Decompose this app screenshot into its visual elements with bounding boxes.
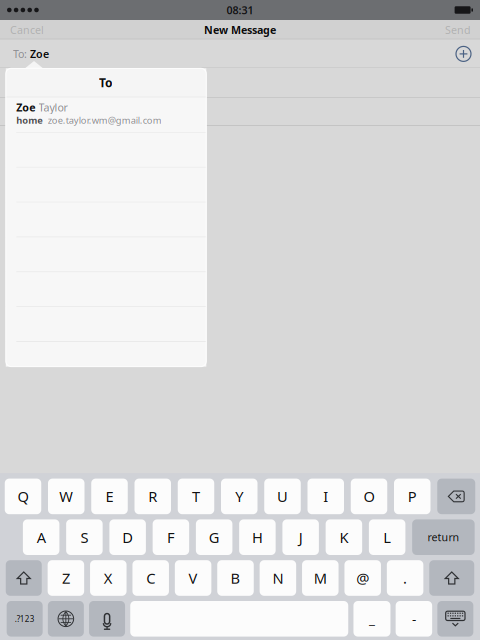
button[interactable]: Hide keyboard bbox=[437, 601, 473, 637]
staticText: A bbox=[37, 527, 46, 547]
staticText: U bbox=[277, 487, 288, 506]
button[interactable]: D bbox=[109, 519, 146, 555]
staticText: Send bbox=[445, 23, 471, 37]
staticText: T bbox=[192, 487, 200, 506]
button[interactable]: B bbox=[217, 560, 254, 596]
button[interactable]: Y bbox=[221, 479, 257, 514]
staticText: G bbox=[209, 527, 220, 547]
staticText: zoe.taylor.wm@gmail.com bbox=[48, 114, 162, 126]
button[interactable]: V bbox=[175, 560, 211, 596]
staticText: @ bbox=[356, 568, 369, 588]
staticText: H bbox=[252, 527, 263, 547]
button[interactable]: return bbox=[412, 519, 475, 555]
staticText: To: bbox=[13, 47, 27, 61]
staticText: C bbox=[146, 568, 155, 588]
button[interactable]: - bbox=[396, 601, 432, 637]
staticText: home bbox=[16, 114, 43, 126]
staticText: K bbox=[339, 527, 348, 547]
staticText: Taylor bbox=[38, 100, 67, 114]
staticText: L bbox=[383, 527, 391, 547]
button[interactable]: _ bbox=[353, 601, 390, 637]
staticText: R bbox=[148, 487, 157, 506]
button[interactable]: X bbox=[90, 560, 126, 596]
staticText: .?123 bbox=[15, 613, 35, 624]
button[interactable]: H bbox=[239, 519, 276, 555]
button[interactable]: L bbox=[369, 519, 405, 555]
button[interactable]: C bbox=[132, 560, 169, 596]
button[interactable]: Shift bbox=[6, 560, 42, 596]
staticText: _ bbox=[369, 610, 375, 628]
button[interactable]: A bbox=[23, 519, 59, 555]
button[interactable]: N bbox=[260, 560, 296, 596]
button[interactable]: K bbox=[326, 519, 362, 555]
staticText: B bbox=[230, 568, 240, 588]
button[interactable]: O bbox=[351, 479, 387, 514]
button[interactable]: R bbox=[134, 479, 171, 514]
staticText: Y bbox=[235, 487, 243, 506]
staticText: E bbox=[105, 487, 113, 506]
button[interactable]: F bbox=[153, 519, 189, 555]
staticText: P bbox=[408, 487, 417, 506]
button[interactable]: I bbox=[307, 479, 344, 514]
staticText: Cancel bbox=[10, 23, 44, 37]
staticText: W bbox=[59, 487, 73, 506]
button[interactable]: W bbox=[48, 479, 84, 514]
staticText: - bbox=[412, 610, 416, 628]
staticText: X bbox=[104, 568, 113, 588]
staticText: Q bbox=[17, 487, 28, 506]
button[interactable]: G bbox=[196, 519, 232, 555]
button[interactable]: Z bbox=[48, 560, 84, 596]
staticText: Z bbox=[62, 568, 70, 588]
staticText: O bbox=[363, 487, 374, 506]
button[interactable]: M bbox=[302, 560, 339, 596]
button[interactable]: J bbox=[282, 519, 319, 555]
staticText: V bbox=[189, 568, 198, 588]
button[interactable]: Next keyboard bbox=[48, 601, 84, 637]
staticText: D bbox=[122, 527, 133, 547]
button[interactable]: Add contact bbox=[453, 44, 473, 64]
staticText: . bbox=[403, 568, 407, 588]
button[interactable]: Shift bbox=[429, 560, 474, 596]
staticText: Zoe bbox=[16, 100, 35, 114]
staticText: F bbox=[167, 527, 175, 547]
staticText: Zoe bbox=[27, 47, 49, 61]
button[interactable]: U bbox=[264, 479, 301, 514]
staticText: M bbox=[314, 568, 327, 588]
staticText: I bbox=[323, 487, 328, 506]
button[interactable]: E bbox=[91, 479, 128, 514]
staticText: 08:31 bbox=[226, 3, 253, 17]
staticText: return bbox=[427, 530, 459, 544]
button[interactable]: Zoe bbox=[6, 97, 206, 132]
button[interactable]: @ bbox=[344, 560, 381, 596]
button[interactable]: .?123 bbox=[7, 601, 43, 637]
staticText: New Message bbox=[204, 23, 276, 37]
button[interactable]: T bbox=[178, 479, 214, 514]
button[interactable]: S bbox=[66, 519, 103, 555]
button[interactable] bbox=[130, 601, 348, 637]
staticText: N bbox=[272, 568, 283, 588]
button[interactable]: Cancel bbox=[0, 20, 54, 39]
staticText: J bbox=[299, 527, 303, 547]
button[interactable]: . bbox=[387, 560, 423, 596]
button[interactable]: Delete bbox=[437, 479, 475, 514]
button[interactable]: Q bbox=[5, 479, 41, 514]
button[interactable]: Dictation bbox=[89, 601, 125, 637]
staticText: To bbox=[99, 75, 113, 90]
staticText: S bbox=[80, 527, 88, 547]
button[interactable]: P bbox=[394, 479, 430, 514]
button[interactable]: Send bbox=[436, 20, 480, 39]
